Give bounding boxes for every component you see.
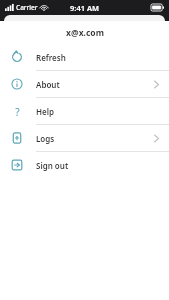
staticText: About	[36, 79, 60, 90]
button[interactable]: Sign out	[0, 152, 169, 178]
staticText: 9:41 AM	[70, 3, 99, 13]
staticText: ?	[15, 105, 20, 117]
button[interactable]: ?	[0, 98, 169, 124]
staticText: Logs	[36, 133, 55, 144]
button[interactable]: Logs	[0, 125, 169, 151]
staticText: Sign out	[36, 160, 69, 171]
staticText: Help	[36, 106, 54, 117]
staticText: x@x.com	[66, 27, 104, 39]
button[interactable]: About	[0, 71, 169, 97]
staticText: Carrier	[16, 3, 38, 12]
staticText: Refresh	[36, 52, 66, 63]
button[interactable]: Refresh	[0, 44, 169, 70]
